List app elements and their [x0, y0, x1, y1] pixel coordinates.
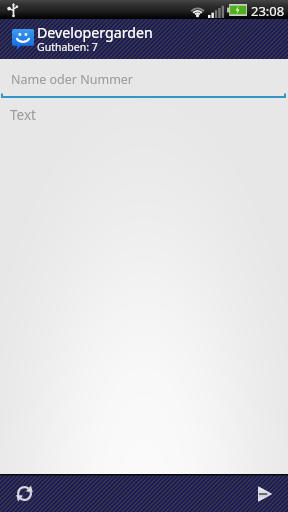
- button[interactable]: Refresh: [8, 477, 41, 510]
- button[interactable]: Text: [0, 99, 288, 133]
- button[interactable]: Developergarden: [0, 19, 288, 59]
- staticText: 23:08: [251, 2, 285, 20]
- staticText: Guthaben: 7: [37, 40, 98, 54]
- staticText: Text: [10, 106, 36, 124]
- staticText: Name oder Nummer: [11, 71, 134, 88]
- staticText: Developergarden: [37, 23, 153, 42]
- button[interactable]: Name oder Nummer: [0, 59, 288, 99]
- button[interactable]: Send: [248, 477, 281, 510]
